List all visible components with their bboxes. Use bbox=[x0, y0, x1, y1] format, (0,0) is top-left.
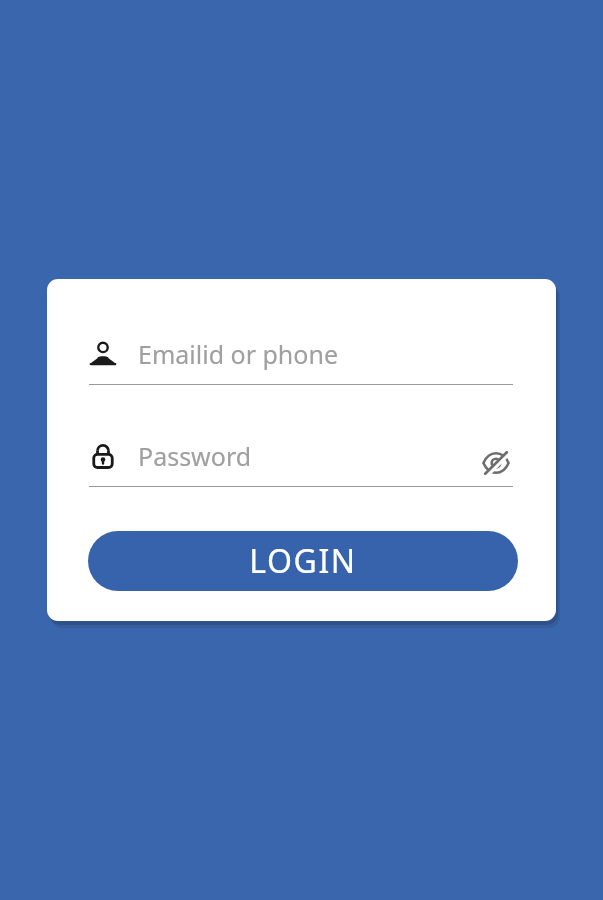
staticText: Emailid or phone bbox=[138, 337, 338, 371]
button[interactable]: Show password bbox=[479, 446, 513, 480]
button[interactable]: Account bbox=[89, 337, 513, 385]
other: Account bbox=[89, 340, 117, 368]
staticText: LOGIN bbox=[249, 539, 357, 583]
button[interactable]: Password bbox=[89, 439, 513, 487]
button[interactable]: LOGIN bbox=[88, 531, 518, 591]
staticText: Password bbox=[138, 439, 252, 473]
other: Password bbox=[89, 442, 117, 470]
